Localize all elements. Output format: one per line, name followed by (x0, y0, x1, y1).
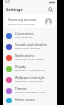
button[interactable]: Display (3, 63, 57, 74)
staticText: Profile • Find My Mobile (8, 22, 35, 25)
button[interactable]: Connections (3, 30, 57, 41)
staticText: Themes • Wallpapers • Icons (15, 91, 46, 94)
staticText: Settings (6, 7, 23, 12)
staticText: Sounds and vibration (15, 43, 47, 47)
button[interactable]: Samsung account (5, 14, 55, 28)
staticText: Samsung account (8, 17, 37, 22)
staticText: Brightness • Navigation bar (15, 69, 45, 72)
button[interactable]: Sounds and vibration (3, 41, 57, 52)
staticText: Display (15, 65, 26, 69)
staticText: Wallpapers • Color palette (15, 80, 43, 83)
staticText: Themes (15, 87, 27, 91)
staticText: 9:41 (5, 0, 11, 4)
staticText: Notifications (15, 54, 34, 58)
button[interactable]: Wallpaper and style (3, 74, 57, 85)
button[interactable]: Notifications (3, 52, 57, 63)
staticText: Status bar • Do not disturb (15, 58, 44, 61)
staticText: Wallpaper and style (15, 76, 45, 80)
staticText: Connections (15, 32, 34, 36)
button[interactable]: Themes (3, 85, 57, 96)
button[interactable]: Search (47, 6, 54, 13)
staticText: Sound mode • Ringtone (15, 47, 41, 50)
staticText: Wi-Fi • Bluetooth (15, 36, 33, 39)
button[interactable]: Home screen (3, 96, 57, 105)
staticText: Home screen (15, 98, 35, 102)
